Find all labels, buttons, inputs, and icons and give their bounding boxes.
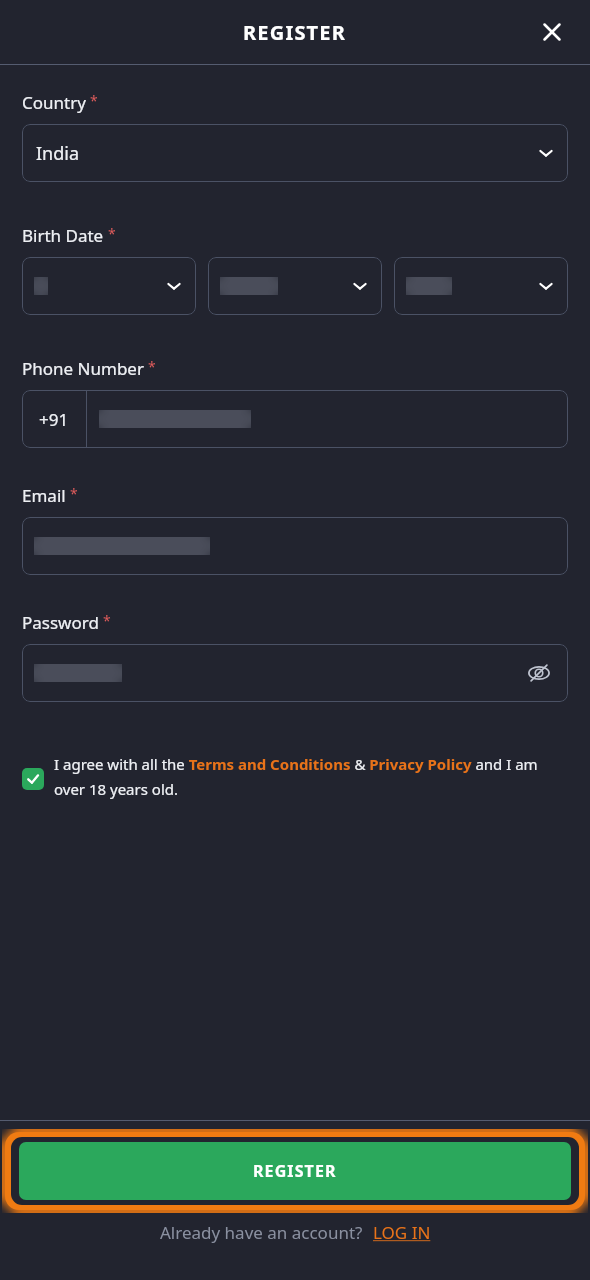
button[interactable]: Already have an account?	[160, 1221, 431, 1244]
staticText: *	[108, 224, 116, 243]
button[interactable]: Show password	[22, 644, 568, 702]
staticText: +91	[39, 408, 69, 431]
button[interactable]: Close	[532, 12, 572, 52]
staticText: LOG IN	[373, 1221, 431, 1244]
staticText: I agree with all the Terms and Condition…	[54, 754, 568, 799]
staticText: Email	[22, 484, 66, 507]
button[interactable]: I agree with all the Terms and Condition…	[22, 754, 568, 799]
staticText: India	[36, 141, 80, 166]
button[interactable]: +91	[22, 390, 568, 448]
staticText: *	[148, 357, 156, 376]
staticText: *	[103, 611, 111, 630]
staticText: *	[70, 484, 78, 503]
staticText: Already have an account?	[160, 1221, 363, 1244]
staticText: Birth Date	[22, 224, 104, 247]
button[interactable]: Select year	[394, 257, 568, 315]
staticText: *	[90, 91, 98, 110]
staticText: REGISTER	[243, 19, 347, 46]
button[interactable]: Select country	[22, 124, 568, 182]
staticText: Country	[22, 91, 86, 114]
button[interactable]: Show password	[524, 658, 554, 688]
button[interactable]: Select day	[22, 257, 196, 315]
button[interactable]: REGISTER	[19, 1142, 571, 1200]
button[interactable]: Select month	[208, 257, 382, 315]
staticText: Phone Number	[22, 357, 144, 380]
staticText: REGISTER	[253, 1160, 337, 1182]
staticText: Password	[22, 611, 99, 634]
button[interactable]	[22, 517, 568, 575]
